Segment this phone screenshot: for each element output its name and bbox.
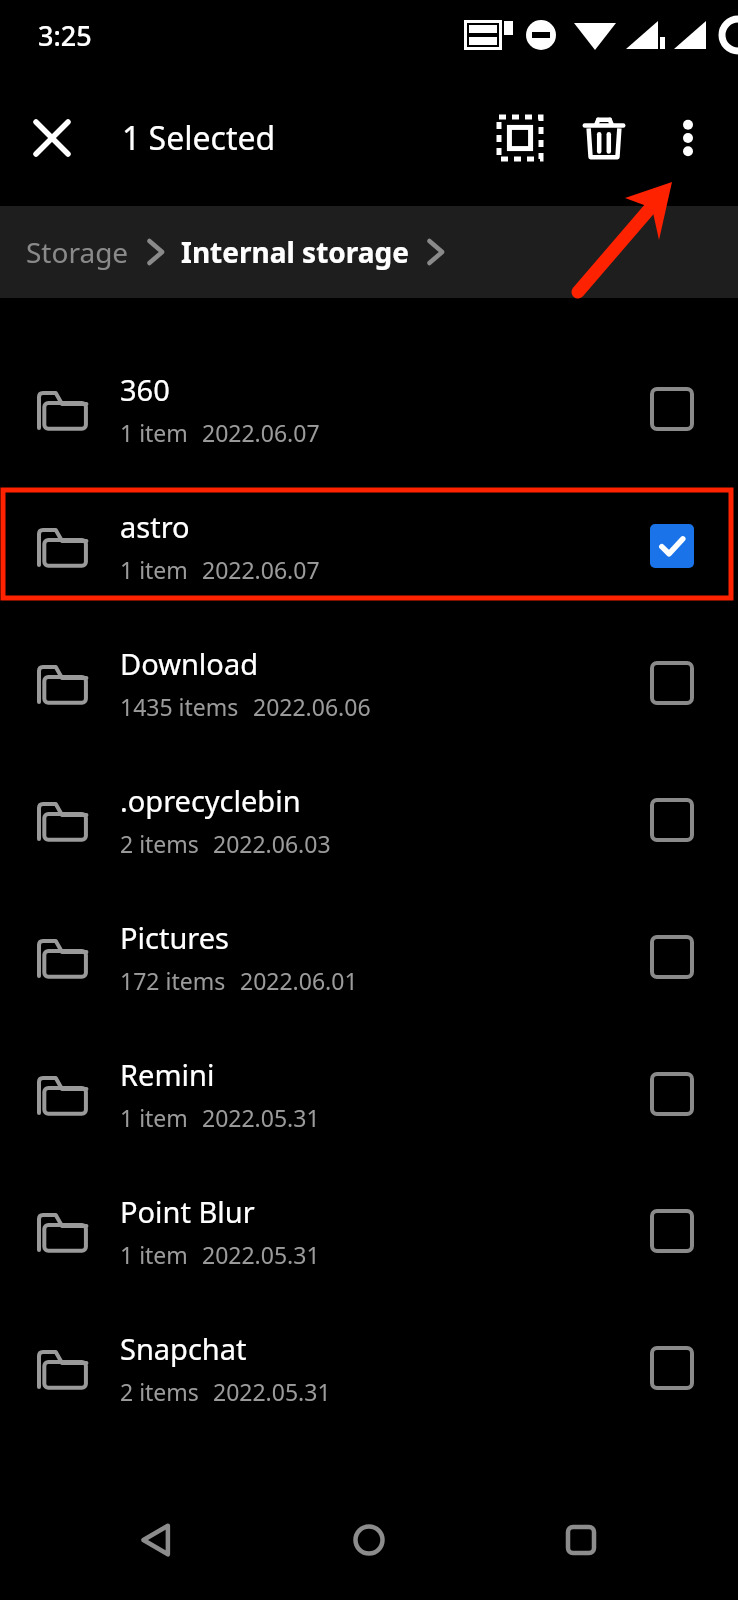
button[interactable]: Point Blur bbox=[0, 1162, 738, 1299]
staticText: 1 item bbox=[120, 1239, 188, 1270]
staticText: 1 item bbox=[120, 417, 188, 448]
button[interactable]: Select Point Blur bbox=[630, 1189, 714, 1273]
staticText: 2022.06.03 bbox=[213, 828, 331, 859]
staticText: astro bbox=[120, 507, 190, 546]
staticText: 2022.06.07 bbox=[202, 417, 320, 448]
staticText: Storage bbox=[26, 233, 129, 271]
button[interactable]: Select Pictures bbox=[630, 915, 714, 999]
button[interactable]: Internal storage bbox=[181, 233, 409, 271]
staticText: 2 items bbox=[120, 828, 199, 859]
button[interactable]: Select 360 bbox=[630, 367, 714, 451]
button[interactable]: Download bbox=[0, 614, 738, 751]
staticText: 2022.05.31 bbox=[202, 1239, 320, 1270]
staticText: 1 Selected bbox=[122, 116, 276, 160]
staticText: 360 bbox=[120, 370, 170, 409]
staticText: 2022.05.31 bbox=[202, 1102, 320, 1133]
staticText: 2022.06.06 bbox=[253, 691, 371, 722]
button[interactable]: Select Download bbox=[630, 641, 714, 725]
button[interactable]: Select .oprecyclebin bbox=[630, 778, 714, 862]
button[interactable]: .oprecyclebin bbox=[0, 751, 738, 888]
staticText: Internal storage bbox=[181, 233, 409, 271]
staticText: 2022.05.31 bbox=[213, 1376, 331, 1407]
staticText: Pictures bbox=[120, 918, 229, 957]
staticText: 2022.06.01 bbox=[240, 965, 358, 996]
button[interactable]: Snapchat bbox=[0, 1299, 738, 1436]
button[interactable]: Storage bbox=[26, 233, 129, 271]
button[interactable]: Recent apps bbox=[526, 1485, 636, 1595]
staticText: 172 items bbox=[120, 965, 226, 996]
staticText: 1 item bbox=[120, 554, 188, 585]
staticText: Point Blur bbox=[120, 1192, 255, 1231]
button[interactable]: Pictures bbox=[0, 888, 738, 1025]
button[interactable]: 360 bbox=[0, 340, 738, 477]
staticText: .oprecyclebin bbox=[120, 781, 301, 820]
button[interactable]: Select Snapchat bbox=[630, 1326, 714, 1410]
button[interactable]: Selected astro bbox=[630, 504, 714, 588]
button[interactable]: Select all bbox=[478, 96, 562, 180]
staticText: 2 items bbox=[120, 1376, 199, 1407]
staticText: Snapchat bbox=[120, 1329, 247, 1368]
staticText: 1 item bbox=[120, 1102, 188, 1133]
staticText: 1435 items bbox=[120, 691, 239, 722]
staticText: 2022.06.07 bbox=[202, 554, 320, 585]
button[interactable]: Delete bbox=[562, 96, 646, 180]
staticText: Download bbox=[120, 644, 258, 683]
button[interactable]: Home bbox=[314, 1485, 424, 1595]
button[interactable]: Close selection bbox=[14, 100, 90, 176]
button[interactable]: Select Remini bbox=[630, 1052, 714, 1136]
staticText: 3:25 bbox=[38, 17, 92, 54]
button[interactable]: More options bbox=[646, 96, 730, 180]
button[interactable]: Back bbox=[102, 1485, 212, 1595]
button[interactable]: astro bbox=[0, 477, 738, 614]
staticText: Remini bbox=[120, 1055, 215, 1094]
button[interactable]: Remini bbox=[0, 1025, 738, 1162]
